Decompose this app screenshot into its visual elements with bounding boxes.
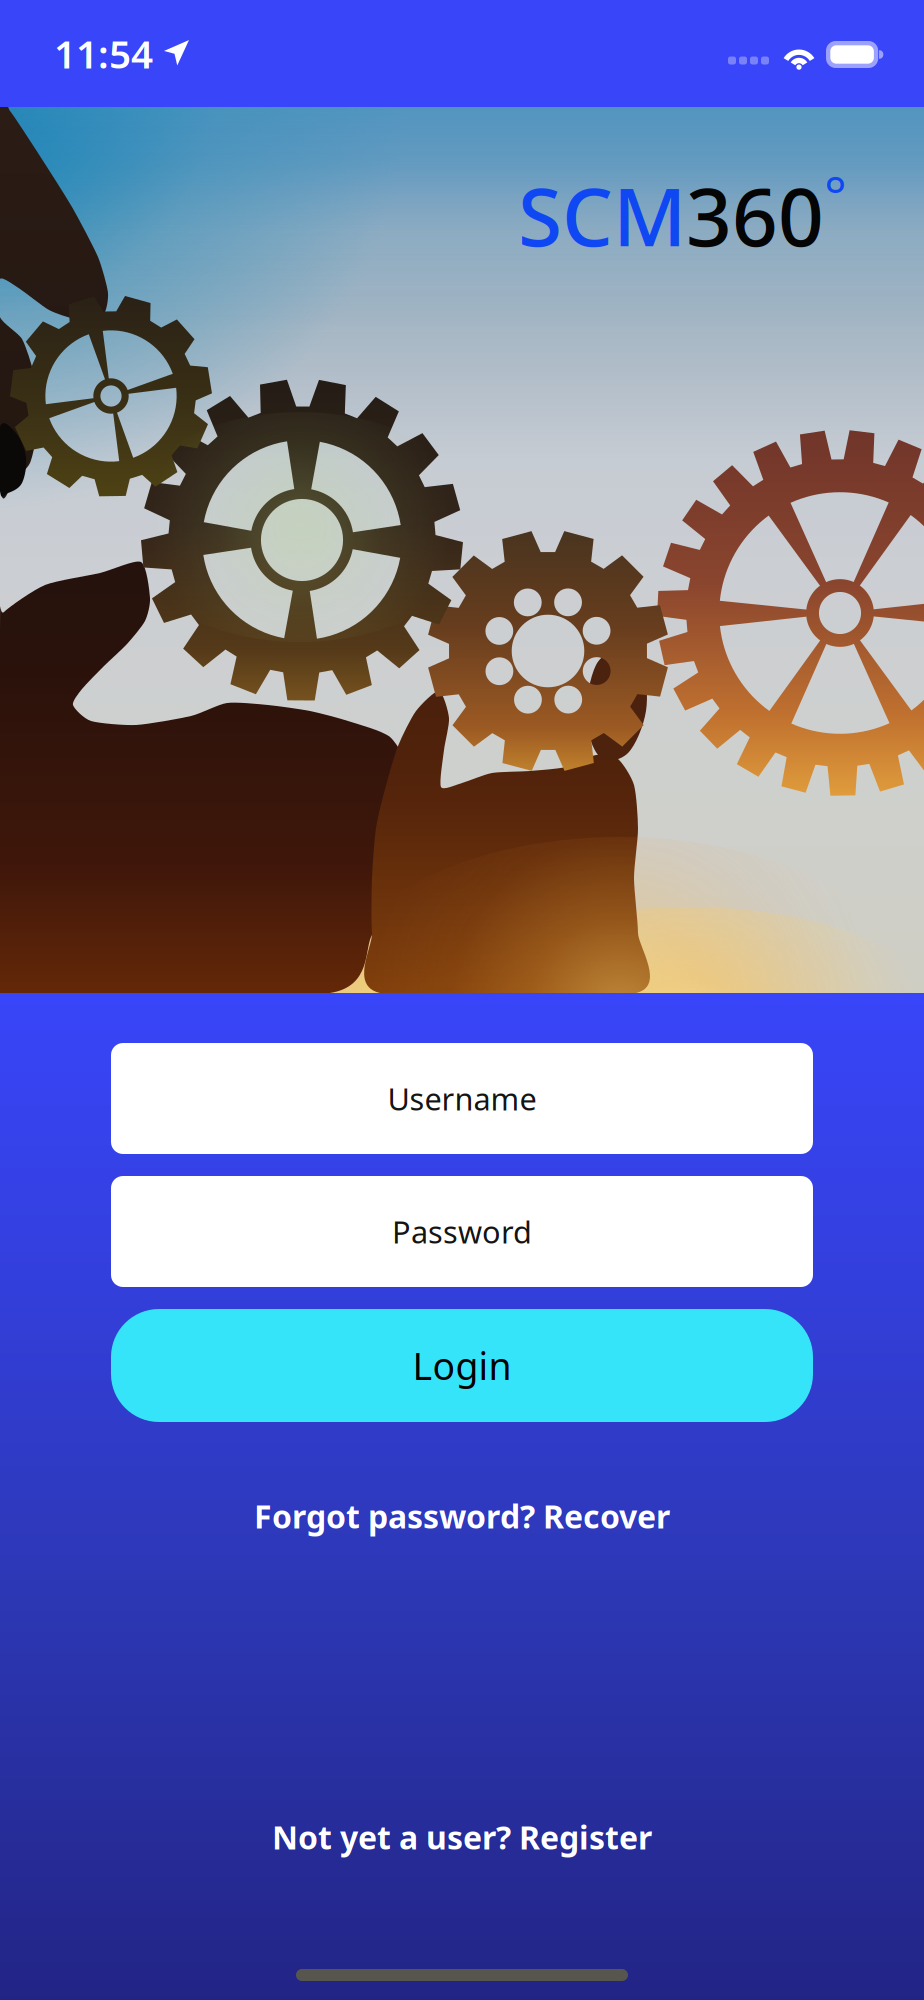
button[interactable]: Username xyxy=(111,1043,813,1154)
button[interactable]: Login xyxy=(111,1309,813,1422)
button[interactable]: Password xyxy=(111,1176,813,1287)
staticText: Forgot password? Recover xyxy=(254,1495,670,1537)
staticText: Not yet a user? Register xyxy=(272,1816,652,1858)
staticText: Login xyxy=(412,1341,511,1390)
button[interactable]: Not yet a user? Register xyxy=(272,1815,652,1859)
staticText: ° xyxy=(824,159,847,230)
staticText: Password xyxy=(392,1211,532,1252)
staticText: Username xyxy=(387,1078,536,1119)
staticText: 360 xyxy=(686,162,824,268)
staticText: SCM xyxy=(518,162,686,268)
button[interactable]: Forgot password? Recover xyxy=(254,1494,670,1538)
staticText: 11:54 xyxy=(54,28,153,79)
